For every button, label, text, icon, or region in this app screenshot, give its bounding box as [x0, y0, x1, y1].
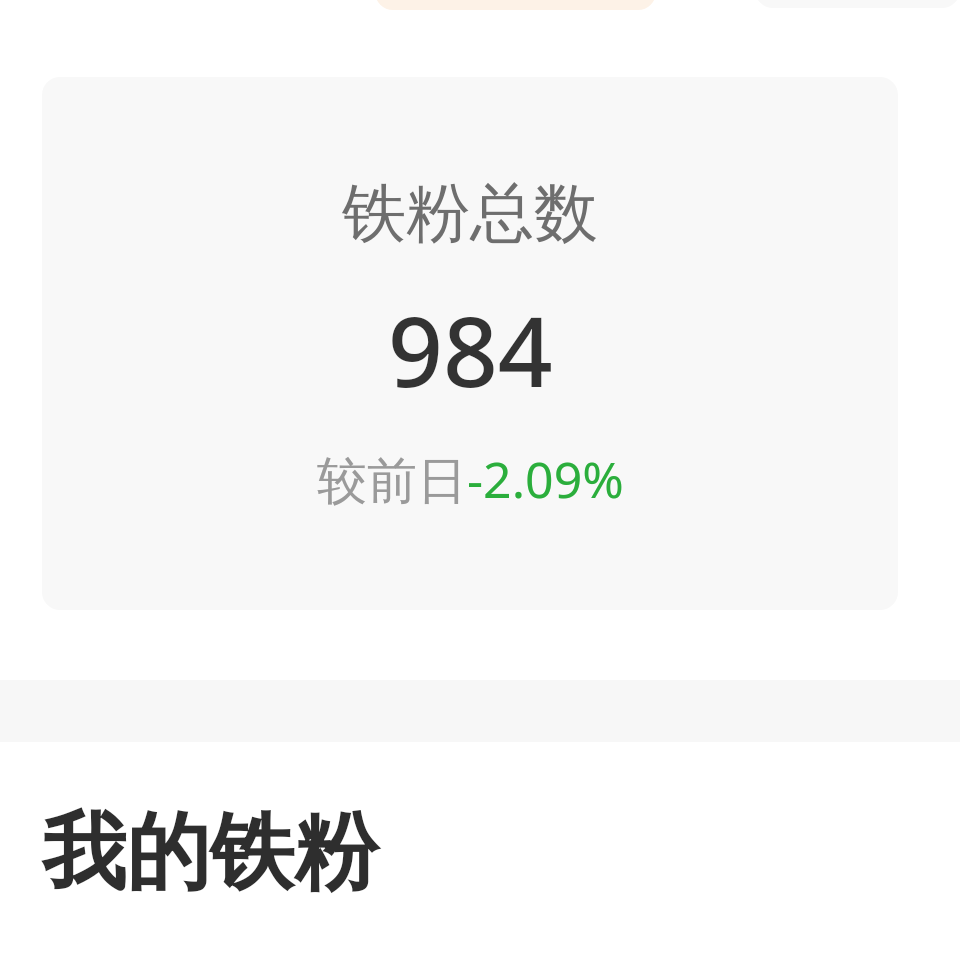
- staticText: 984: [388, 284, 553, 415]
- staticText: 铁粉总数: [342, 173, 598, 254]
- staticText: 较前日-2.09%: [317, 445, 624, 513]
- button[interactable]: 铁粉总数: [42, 77, 898, 610]
- button[interactable]: 我的铁粉: [42, 800, 378, 906]
- button[interactable]: [375, 0, 656, 10]
- staticText: 我的铁粉: [42, 800, 378, 906]
